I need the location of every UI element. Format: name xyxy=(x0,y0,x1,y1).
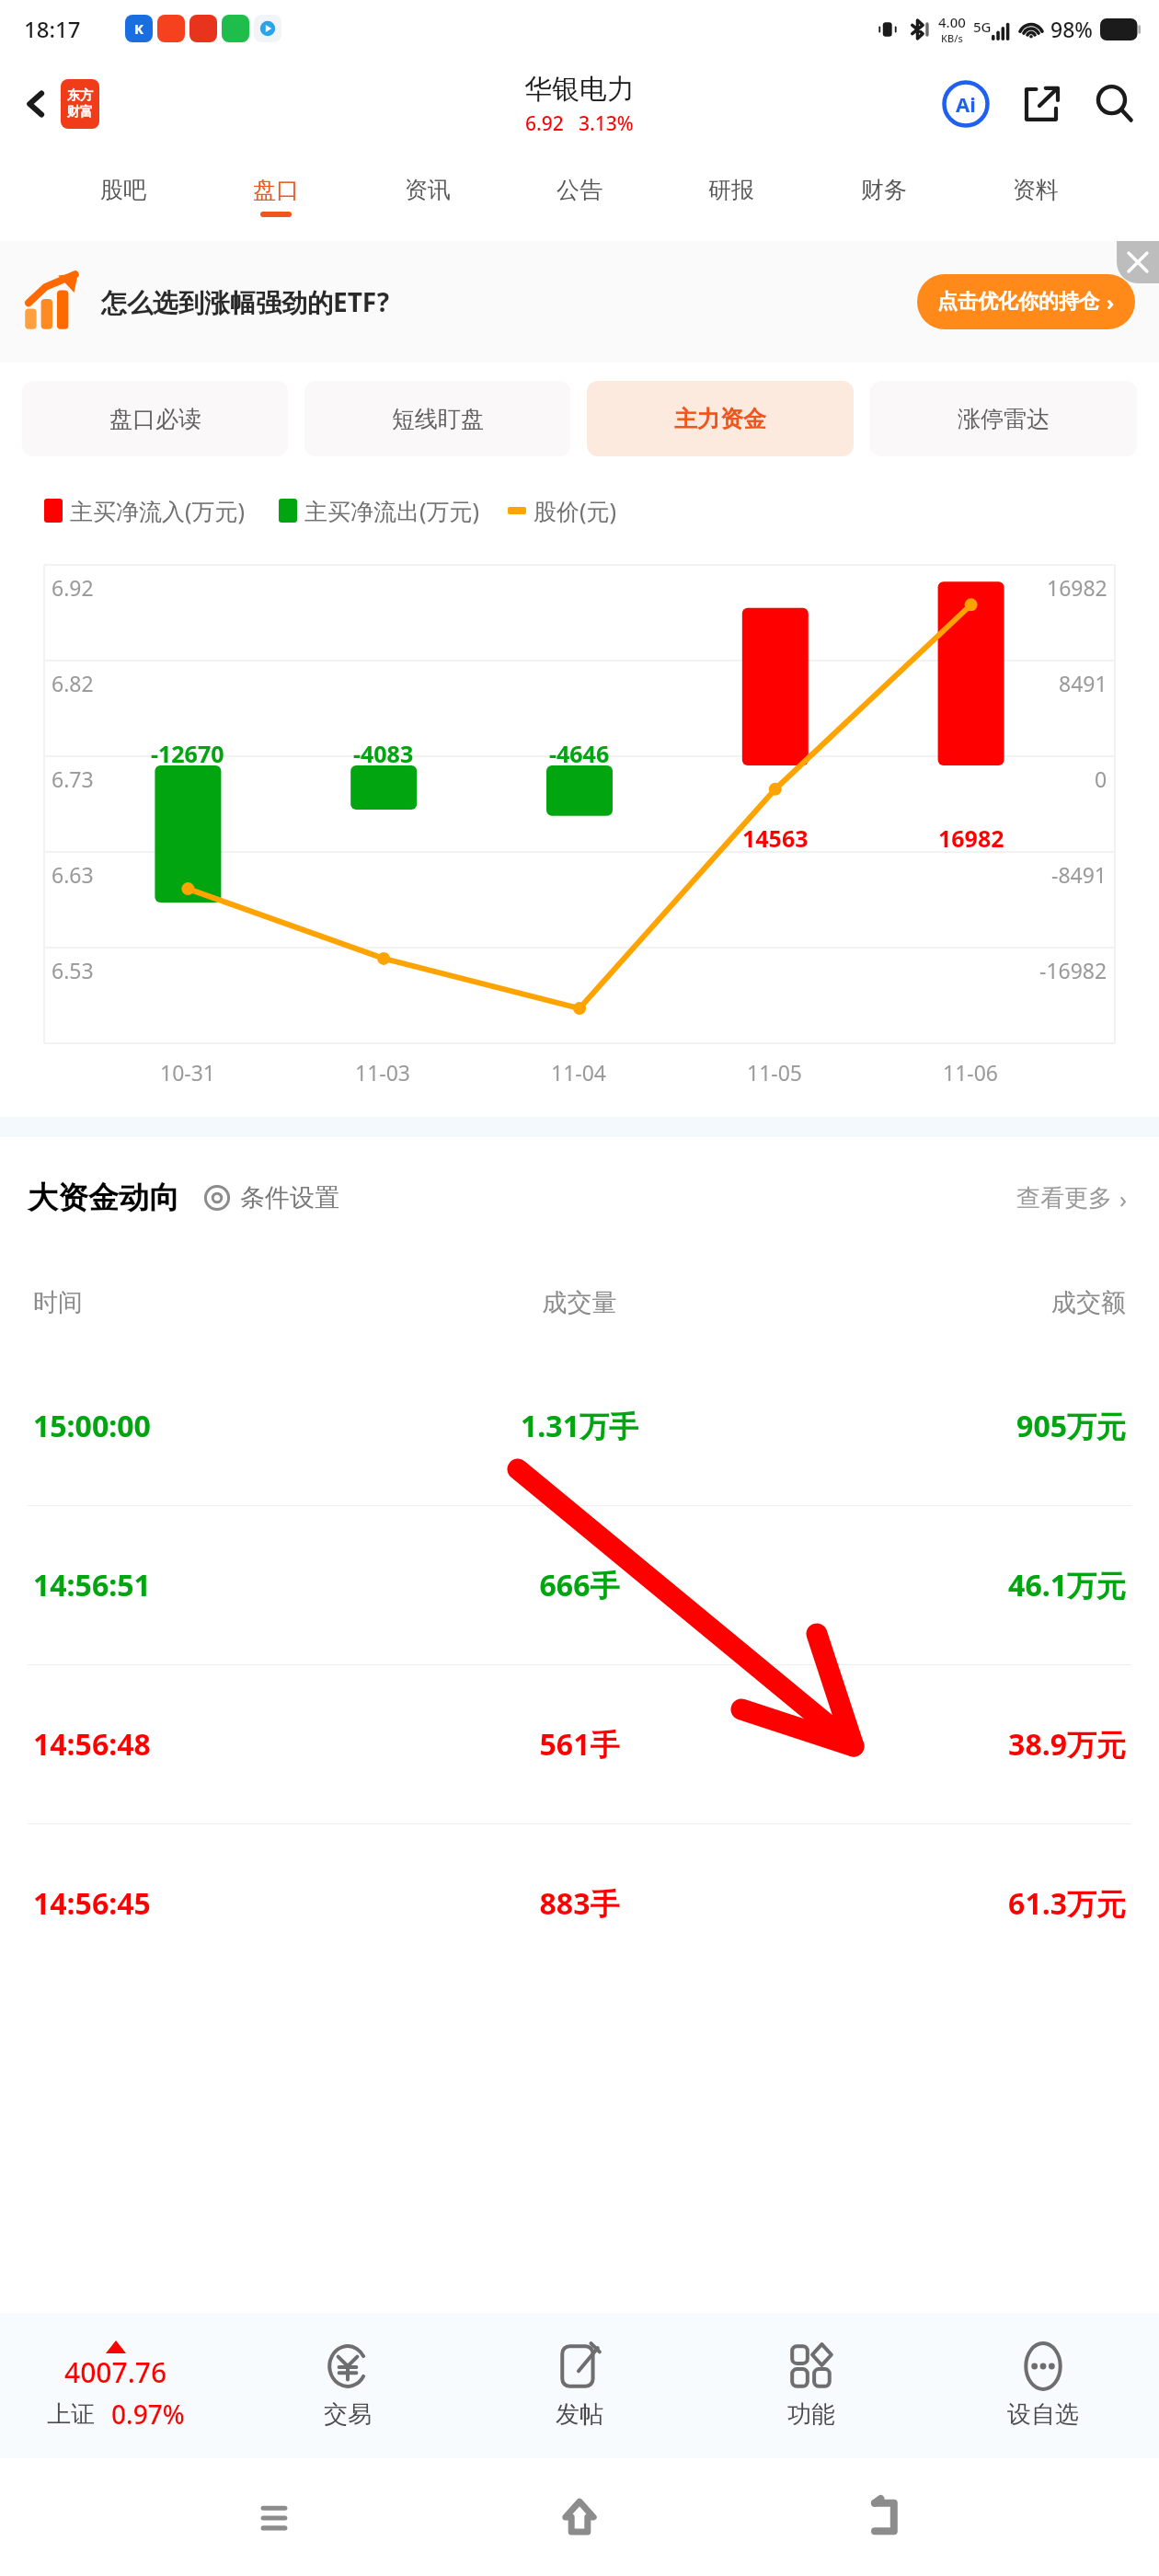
staticText: 6.73 xyxy=(52,765,94,793)
button[interactable]: 设自选 xyxy=(927,2342,1159,2430)
staticText: 盘口 xyxy=(253,176,299,204)
staticText: 盘口必读 xyxy=(109,405,201,433)
button[interactable]: 交易 xyxy=(232,2342,464,2430)
staticText: 财富 xyxy=(67,104,93,121)
staticText: 883手 xyxy=(397,1883,762,1924)
button[interactable]: 短线盯盘 xyxy=(304,381,570,456)
staticText: 6.92 xyxy=(525,110,564,137)
staticText: 条件设置 xyxy=(240,1182,339,1213)
staticText: 设自选 xyxy=(1007,2399,1079,2430)
staticText: 666手 xyxy=(397,1565,762,1605)
staticText: 主买净流入(万元) xyxy=(70,495,246,526)
staticText: KB/s xyxy=(941,31,963,45)
staticText: 公告 xyxy=(557,176,602,204)
button[interactable]: AI助手 xyxy=(940,78,992,130)
button[interactable]: 分享 xyxy=(1017,80,1065,128)
staticText: 查看更多 xyxy=(1016,1183,1112,1213)
staticText: 涨停雷达 xyxy=(958,405,1050,433)
button[interactable]: 查看更多 xyxy=(1013,1179,1131,1218)
button[interactable]: 功能 xyxy=(695,2342,927,2430)
button[interactable]: 财务 xyxy=(855,170,912,223)
button[interactable]: 研报 xyxy=(703,170,760,223)
staticText: 61.3万元 xyxy=(762,1883,1126,1924)
staticText: › xyxy=(1107,288,1115,316)
button[interactable]: 盘口必读 xyxy=(22,381,288,456)
staticText: 18:17 xyxy=(24,14,81,44)
staticText: 东方 xyxy=(67,87,93,104)
button[interactable]: 条件设置 xyxy=(200,1179,343,1217)
staticText: 大资金动向 xyxy=(28,1179,179,1217)
staticText: 1.31万手 xyxy=(397,1406,762,1446)
staticText: 发帖 xyxy=(556,2399,603,2430)
staticText: 38.9万元 xyxy=(762,1724,1126,1765)
staticText: 14:56:51 xyxy=(33,1565,397,1605)
staticText: 怎么选到涨幅强劲的ETF? xyxy=(101,284,390,319)
staticText: 16982 xyxy=(938,822,1004,854)
staticText: 3.13% xyxy=(579,110,634,137)
staticText: -12670 xyxy=(151,738,224,769)
staticText: 股吧 xyxy=(100,176,146,204)
button[interactable]: 盘口 xyxy=(247,170,304,223)
staticText: -8491 xyxy=(1051,860,1107,889)
staticText: 资料 xyxy=(1013,176,1059,204)
staticText: 11-03 xyxy=(355,1058,411,1087)
button[interactable]: 公告 xyxy=(551,170,608,223)
staticText: 8491 xyxy=(1059,669,1107,697)
button[interactable]: 怎么选到涨幅强劲的ETF? xyxy=(24,241,1135,362)
button[interactable]: 涨停雷达 xyxy=(870,381,1137,456)
button[interactable]: 关闭广告 xyxy=(1117,241,1159,283)
staticText: 11-05 xyxy=(747,1058,803,1087)
staticText: 研报 xyxy=(708,176,754,204)
staticText: 资讯 xyxy=(405,176,451,204)
button[interactable]: 资讯 xyxy=(399,170,456,223)
button[interactable]: 4007.76 xyxy=(0,2340,232,2432)
staticText: -4083 xyxy=(353,738,414,769)
button[interactable]: 14:56:48 xyxy=(0,1665,1159,1823)
staticText: 14:56:48 xyxy=(33,1724,397,1765)
staticText: 16982 xyxy=(1047,573,1107,602)
button[interactable]: 资料 xyxy=(1007,170,1064,223)
button[interactable]: 返回 xyxy=(854,2485,918,2549)
staticText: 561手 xyxy=(397,1724,762,1765)
button[interactable]: 股吧 xyxy=(95,170,152,223)
button[interactable]: 点击优化你的持仓 xyxy=(917,274,1135,329)
staticText: 11-06 xyxy=(943,1058,999,1087)
staticText: 主买净流出(万元) xyxy=(304,495,480,526)
staticText: Ai xyxy=(956,90,976,118)
staticText: 4007.76 xyxy=(64,2353,167,2391)
staticText: 98% xyxy=(1050,15,1093,43)
button[interactable]: 主页 xyxy=(547,2485,612,2549)
staticText: 0.97% xyxy=(111,2397,185,2432)
button[interactable]: 搜索 xyxy=(1091,80,1139,128)
staticText: 成交量 xyxy=(397,1287,762,1318)
staticText: 点击优化你的持仓 xyxy=(937,289,1099,315)
staticText: 主力资金 xyxy=(674,405,766,433)
staticText: 时间 xyxy=(33,1287,397,1318)
staticText: 46.1万元 xyxy=(762,1565,1126,1605)
staticText: 华银电力 xyxy=(524,72,635,107)
button[interactable]: 发帖 xyxy=(464,2342,695,2430)
staticText: 6.53 xyxy=(52,956,94,984)
staticText: 14:56:45 xyxy=(33,1883,397,1924)
button[interactable]: 15:00:00 xyxy=(0,1347,1159,1505)
staticText: 股价(元) xyxy=(534,495,617,526)
button[interactable]: 最近任务 xyxy=(242,2485,306,2549)
staticText: -4646 xyxy=(549,738,610,769)
staticText: 905万元 xyxy=(762,1406,1126,1446)
staticText: 6.63 xyxy=(52,860,94,889)
staticText: 11-04 xyxy=(551,1058,607,1087)
staticText: 交易 xyxy=(324,2399,372,2430)
staticText: 财务 xyxy=(861,176,907,204)
staticText: 14563 xyxy=(742,822,809,854)
staticText: K xyxy=(134,19,143,38)
staticText: 短线盯盘 xyxy=(392,405,484,433)
staticText: 0 xyxy=(1095,765,1107,793)
staticText: 6.82 xyxy=(52,669,94,697)
staticText: 15:00:00 xyxy=(33,1406,397,1446)
staticText: 功能 xyxy=(787,2399,835,2430)
button[interactable]: 14:56:45 xyxy=(0,1824,1159,1983)
staticText: 10-31 xyxy=(160,1058,216,1087)
button[interactable]: 主力资金 xyxy=(587,381,854,456)
button[interactable]: 返回 xyxy=(13,72,107,136)
button[interactable]: 14:56:51 xyxy=(0,1506,1159,1664)
